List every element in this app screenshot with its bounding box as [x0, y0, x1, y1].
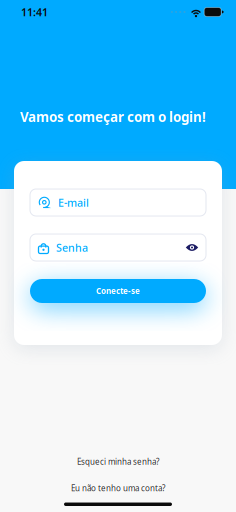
staticText: 11:41 — [21, 5, 48, 19]
staticText: Esqueci minha senha? — [77, 456, 159, 467]
button[interactable]: Conecte-se — [30, 279, 206, 303]
button[interactable]: Esqueci minha senha? — [77, 456, 159, 467]
staticText: E-mail — [58, 195, 89, 210]
staticText: Eu não tenho uma conta? — [71, 483, 165, 493]
button[interactable]: Eu não tenho uma conta? — [71, 483, 165, 493]
staticText: Conecte-se — [96, 286, 140, 296]
staticText: Senha — [56, 240, 88, 255]
staticText: Vamos começar com o login! — [20, 108, 206, 126]
